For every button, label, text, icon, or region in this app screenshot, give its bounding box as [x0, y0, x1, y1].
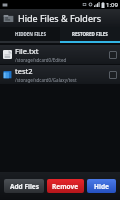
- staticText: /storage/sdcard0/Edited: [15, 57, 67, 63]
- staticText: RESTORED FILES: [72, 31, 108, 37]
- staticText: test2: [15, 66, 33, 76]
- staticText: Hide Files & Folders: [18, 12, 101, 24]
- staticText: HIDDEN FILES: [15, 31, 46, 37]
- button[interactable]: RESTORED FILES: [60, 27, 120, 41]
- button[interactable]: Hide: [87, 179, 116, 193]
- button[interactable]: Select item: [108, 50, 117, 59]
- button[interactable]: Add Files: [4, 179, 44, 193]
- button[interactable]: File.txt: [0, 45, 120, 64]
- staticText: /storage/sdcard0/Galaxy/test: [15, 77, 77, 83]
- staticText: Add Files: [10, 182, 39, 191]
- button[interactable]: HIDDEN FILES: [0, 27, 60, 41]
- staticText: 1:09: [106, 1, 118, 9]
- button[interactable]: test2: [0, 65, 120, 84]
- button[interactable]: Select item: [108, 70, 117, 79]
- button[interactable]: Remove: [47, 179, 84, 193]
- staticText: Hide: [94, 182, 109, 191]
- staticText: File.txt: [15, 46, 39, 56]
- staticText: Remove: [52, 182, 79, 191]
